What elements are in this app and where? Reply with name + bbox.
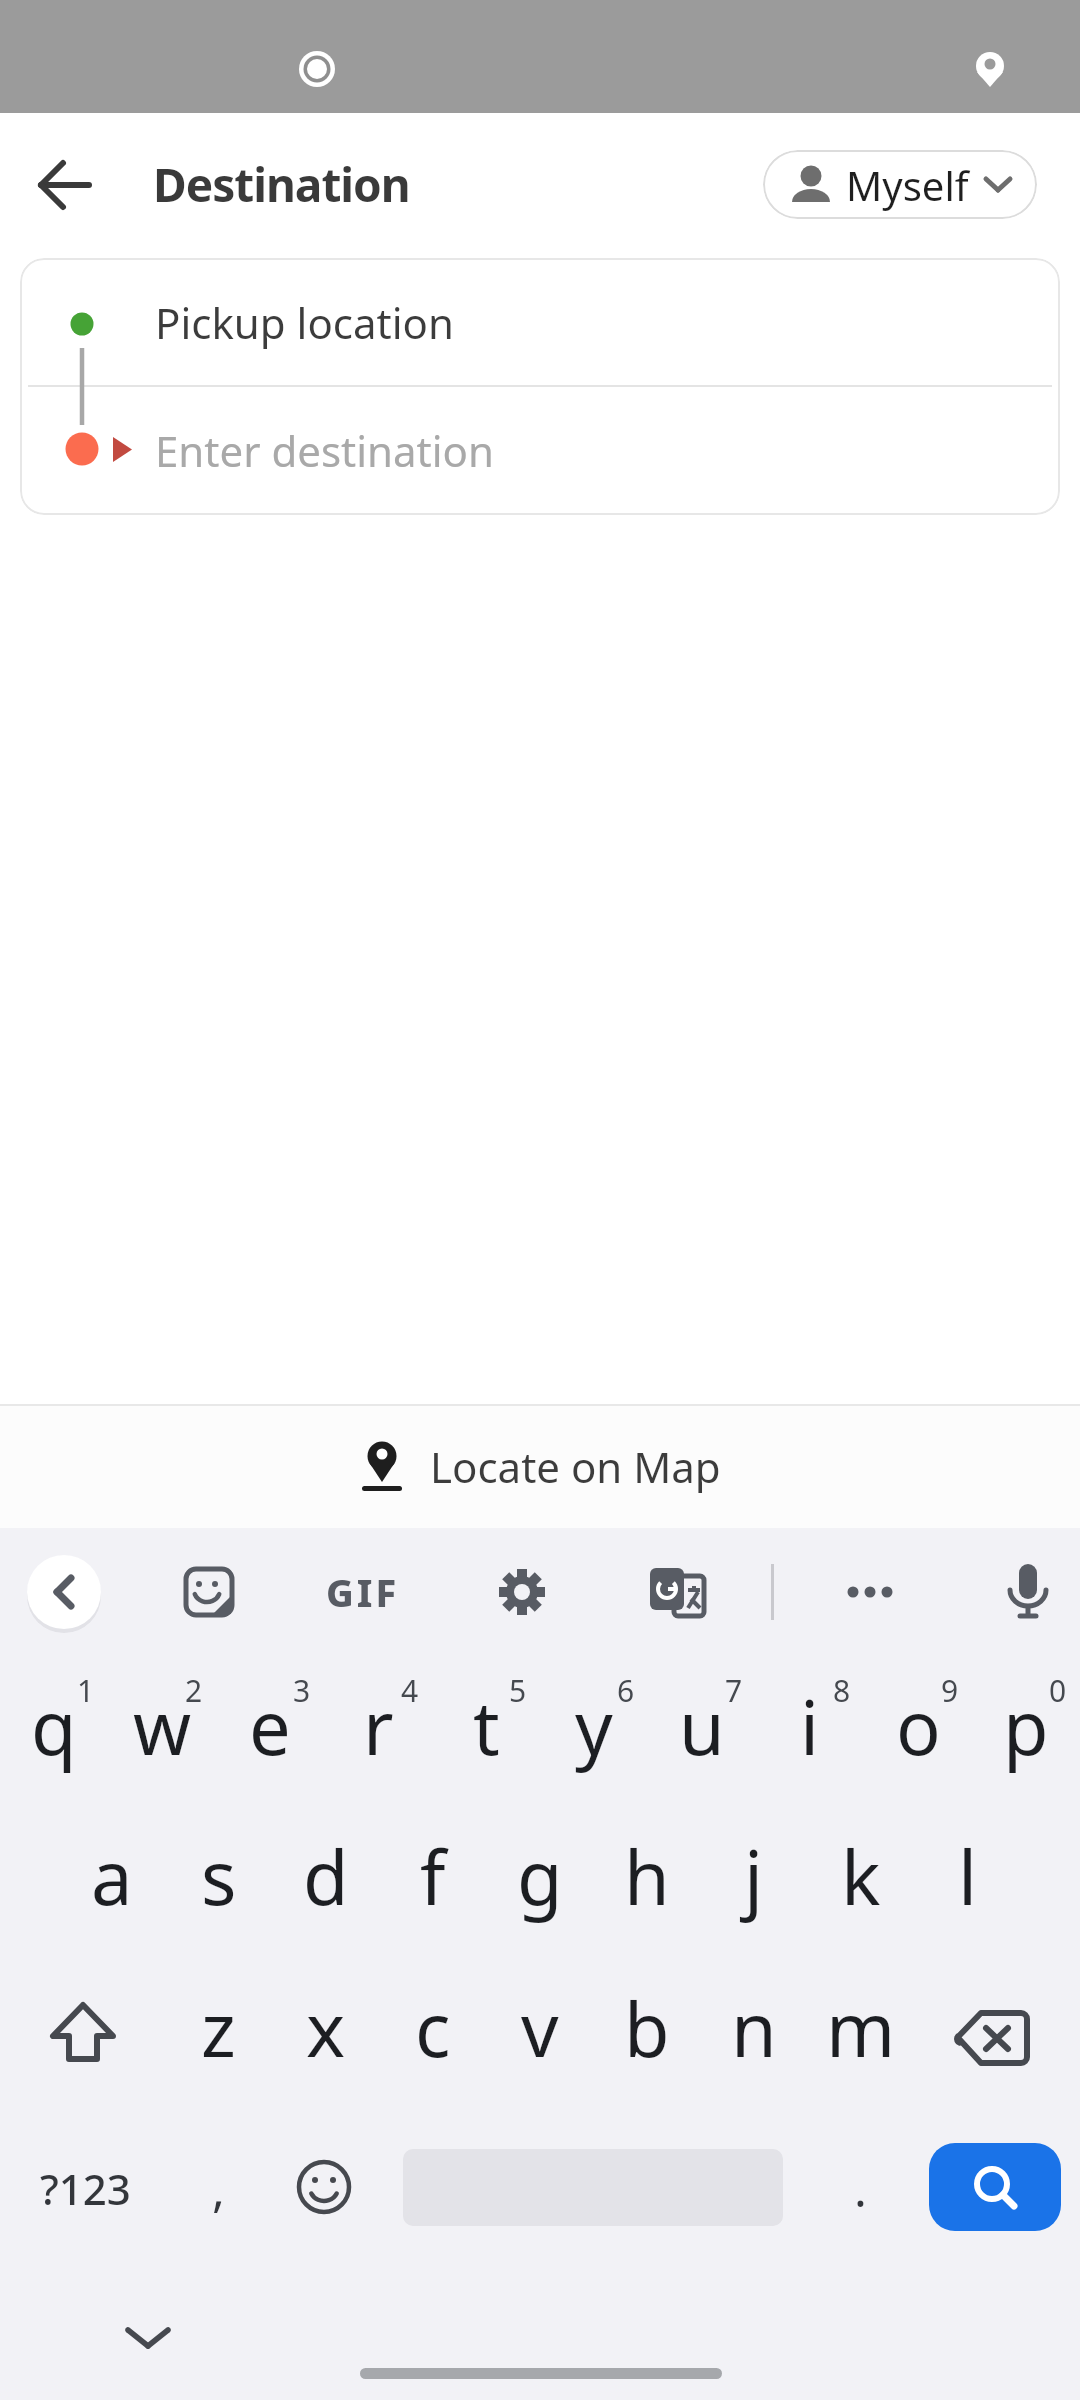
button[interactable] xyxy=(650,1568,706,1616)
button[interactable]: i xyxy=(756,1653,864,1799)
staticText: b xyxy=(624,1978,670,2079)
button[interactable] xyxy=(25,145,105,225)
button[interactable]: x xyxy=(272,1955,379,2101)
staticText: Destination xyxy=(153,153,410,216)
staticText: 8 xyxy=(833,1670,851,1706)
staticText: c xyxy=(415,1978,451,2079)
button[interactable]: p xyxy=(972,1653,1080,1799)
staticText: t xyxy=(473,1676,500,1777)
staticText: . xyxy=(854,2156,867,2221)
staticText: 3 xyxy=(293,1670,311,1706)
button[interactable]: j xyxy=(700,1803,807,1949)
staticText: v xyxy=(521,1978,559,2079)
staticText: d xyxy=(303,1826,349,1927)
button[interactable]: b xyxy=(593,1955,700,2101)
button[interactable]: d xyxy=(272,1803,379,1949)
button[interactable]: q xyxy=(0,1653,108,1799)
button[interactable]: Pickup location xyxy=(20,258,1060,386)
button[interactable]: . xyxy=(820,2118,900,2258)
button[interactable]: u xyxy=(648,1653,756,1799)
staticText: g xyxy=(517,1826,563,1927)
button[interactable]: c xyxy=(379,1955,486,2101)
staticText: GIF xyxy=(326,1566,400,1618)
button[interactable]: f xyxy=(379,1803,486,1949)
staticText: 0 xyxy=(1049,1670,1067,1706)
staticText: 5 xyxy=(509,1670,527,1706)
staticText: Enter destination xyxy=(155,422,494,479)
button[interactable] xyxy=(183,1566,235,1618)
staticText: h xyxy=(624,1826,670,1927)
staticText: 4 xyxy=(401,1670,419,1706)
button[interactable]: a xyxy=(58,1803,165,1949)
staticText: Pickup location xyxy=(155,294,454,351)
staticText: 9 xyxy=(941,1670,959,1706)
staticText: i xyxy=(800,1676,820,1777)
staticText: , xyxy=(212,2156,225,2221)
button[interactable]: w xyxy=(108,1653,216,1799)
button[interactable] xyxy=(1002,1562,1054,1622)
button[interactable]: s xyxy=(165,1803,272,1949)
button[interactable]: g xyxy=(486,1803,593,1949)
button[interactable] xyxy=(836,1568,904,1616)
staticText: e xyxy=(249,1676,291,1777)
button[interactable] xyxy=(108,2318,188,2358)
staticText: 7 xyxy=(725,1670,743,1706)
staticText: f xyxy=(420,1826,446,1927)
staticText: n xyxy=(731,1978,777,2079)
staticText: p xyxy=(1003,1676,1049,1777)
button[interactable]: ?123 xyxy=(20,2118,150,2258)
button[interactable]: GIF xyxy=(300,1558,426,1626)
staticText: 1 xyxy=(77,1670,95,1706)
staticText: u xyxy=(679,1676,725,1777)
button[interactable] xyxy=(296,2159,352,2215)
button[interactable]: t xyxy=(432,1653,540,1799)
button[interactable]: m xyxy=(807,1955,914,2101)
staticText: j xyxy=(744,1826,764,1927)
button[interactable]: v xyxy=(486,1955,593,2101)
staticText: z xyxy=(201,1978,236,2079)
staticText: q xyxy=(31,1676,77,1777)
staticText: s xyxy=(201,1826,237,1927)
button[interactable]: h xyxy=(593,1803,700,1949)
button[interactable]: Enter destination xyxy=(20,386,1060,515)
button[interactable]: y xyxy=(540,1653,648,1799)
staticText: k xyxy=(841,1826,881,1927)
staticText: l xyxy=(958,1826,978,1927)
staticText: 6 xyxy=(617,1670,635,1706)
staticText: r xyxy=(363,1676,394,1777)
staticText: 2 xyxy=(185,1670,203,1706)
button[interactable]: n xyxy=(700,1955,807,2101)
staticText: y xyxy=(575,1676,613,1777)
button[interactable]: r xyxy=(324,1653,432,1799)
button[interactable]: e xyxy=(216,1653,324,1799)
staticText: w xyxy=(133,1676,192,1777)
staticText: ?123 xyxy=(40,2160,131,2217)
button[interactable] xyxy=(27,1555,101,1629)
button[interactable]: l xyxy=(914,1803,1021,1949)
staticText: x xyxy=(306,1978,346,2079)
button[interactable] xyxy=(496,1566,548,1618)
staticText: a xyxy=(91,1826,133,1927)
button[interactable] xyxy=(929,2143,1061,2231)
button[interactable]: Locate on Map xyxy=(0,1404,1080,1528)
button[interactable] xyxy=(40,2002,126,2072)
staticText: o xyxy=(896,1676,941,1777)
button[interactable]: o xyxy=(864,1653,972,1799)
button[interactable]: Myself xyxy=(763,150,1037,219)
button[interactable] xyxy=(955,2010,1035,2066)
button[interactable]: z xyxy=(165,1955,272,2101)
staticText: m xyxy=(826,1978,896,2079)
button[interactable]: , xyxy=(168,2118,268,2258)
button[interactable]: k xyxy=(807,1803,914,1949)
staticText: Locate on Map xyxy=(430,1438,721,1495)
staticText: Myself xyxy=(846,158,969,212)
